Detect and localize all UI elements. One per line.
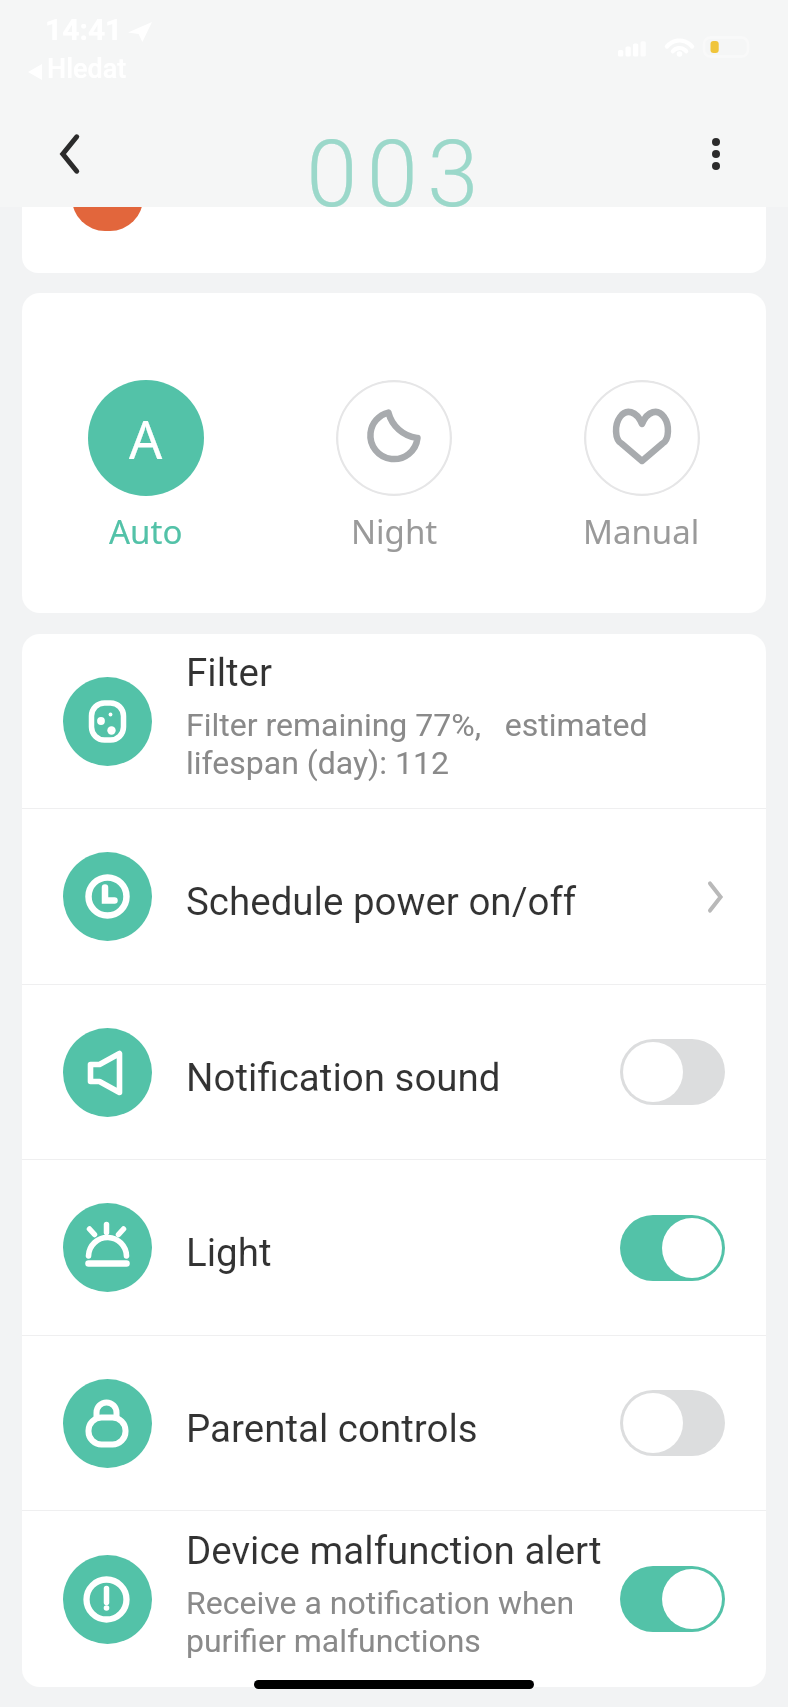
staticText: A: [129, 403, 163, 474]
button[interactable]: Back: [40, 124, 100, 184]
staticText: Receive a notification when purifier mal…: [186, 1584, 575, 1660]
button[interactable]: Notification sound: [22, 985, 766, 1159]
staticText: Manual: [583, 509, 700, 554]
button[interactable]: Light: [22, 1160, 766, 1335]
button[interactable]: Manual: [583, 380, 700, 554]
button[interactable]: Schedule power on/off: [22, 809, 766, 984]
button[interactable]: A: [88, 380, 204, 554]
button[interactable]: Device malfunction alert: [22, 1511, 766, 1687]
staticText: Night: [351, 509, 438, 554]
button[interactable]: Parental controls: [22, 1336, 766, 1510]
staticText: Parental controls: [186, 1406, 478, 1451]
button[interactable]: [620, 1390, 725, 1456]
button[interactable]: Filter: [22, 634, 766, 808]
button[interactable]: More options: [688, 126, 744, 182]
staticText: Notification sound: [186, 1055, 501, 1100]
staticText: 003: [306, 121, 488, 228]
staticText: Light: [186, 1230, 272, 1275]
staticText: Auto: [109, 509, 183, 554]
staticText: 14:41: [45, 12, 123, 47]
staticText: Device malfunction alert: [186, 1528, 602, 1573]
button[interactable]: [620, 1039, 725, 1105]
staticText: Schedule power on/off: [186, 879, 577, 924]
staticText: Filter: [186, 650, 273, 695]
button[interactable]: Night: [336, 380, 452, 554]
staticText: Hledat: [47, 53, 127, 85]
button[interactable]: [620, 1566, 725, 1632]
staticText: Filter remaining 77%, estimated lifespan…: [186, 706, 648, 782]
button[interactable]: [620, 1215, 725, 1281]
